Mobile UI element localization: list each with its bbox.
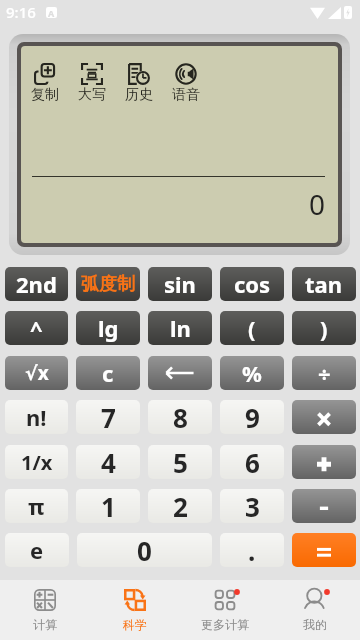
staticText: 语音	[172, 86, 200, 104]
button[interactable]: tan	[292, 267, 356, 301]
button[interactable]: (	[220, 311, 284, 345]
staticText: 4	[101, 445, 116, 479]
staticText: 我的	[303, 617, 327, 632]
button[interactable]: 计算	[0, 580, 90, 640]
staticText: ^	[30, 313, 43, 343]
staticText: 6	[245, 445, 260, 479]
staticText: 复制	[31, 86, 59, 104]
button[interactable]: 更多计算	[180, 580, 270, 640]
staticText: 更多计算	[201, 617, 249, 632]
staticText: 3	[245, 489, 260, 523]
staticText: ln	[170, 313, 191, 343]
staticText: 2nd	[16, 269, 57, 299]
button[interactable]: 1	[76, 489, 140, 523]
button[interactable]: Backspace	[148, 356, 212, 390]
button[interactable]: Equals	[292, 533, 356, 567]
staticText: 大写	[78, 86, 106, 104]
staticText: sin	[164, 269, 196, 299]
staticText: 7	[101, 400, 116, 434]
staticText: n!	[26, 402, 47, 432]
button[interactable]: ^	[5, 311, 68, 345]
staticText: 0	[137, 533, 152, 567]
button[interactable]: cos	[220, 267, 284, 301]
button[interactable]: 7	[76, 400, 140, 434]
button[interactable]: ÷	[292, 356, 356, 390]
button[interactable]: ln	[148, 311, 212, 345]
staticText: (	[248, 313, 256, 343]
button[interactable]: 9	[220, 400, 284, 434]
button[interactable]: 弧度制	[76, 267, 140, 301]
button[interactable]: 2nd	[5, 267, 68, 301]
staticText: 9:16	[6, 2, 36, 22]
button[interactable]: 语音	[162, 63, 209, 104]
button[interactable]: 0	[77, 533, 212, 567]
button[interactable]: 复制	[21, 63, 68, 104]
button[interactable]: π	[5, 489, 68, 523]
button[interactable]: 历史	[115, 63, 162, 104]
staticText: √x	[25, 360, 49, 386]
staticText: ÷	[318, 358, 331, 388]
staticText: e	[30, 535, 44, 565]
button[interactable]: Plus	[292, 445, 356, 479]
button[interactable]: )	[292, 311, 356, 345]
button[interactable]: 5	[148, 445, 212, 479]
staticText: 8	[173, 400, 188, 434]
staticText: π	[28, 491, 45, 521]
button[interactable]: 6	[220, 445, 284, 479]
staticText: 9	[245, 400, 260, 434]
button[interactable]: sin	[148, 267, 212, 301]
staticText: .	[248, 533, 256, 567]
button[interactable]: %	[220, 356, 284, 390]
button[interactable]: .	[220, 533, 284, 567]
staticText: 2	[173, 489, 188, 523]
staticText: A	[48, 7, 55, 18]
staticText: lg	[98, 313, 119, 343]
staticText: 1/x	[21, 449, 53, 476]
button[interactable]: n!	[5, 400, 68, 434]
button[interactable]: Multiply	[292, 400, 356, 434]
button[interactable]: 4	[76, 445, 140, 479]
button[interactable]: 3	[220, 489, 284, 523]
button[interactable]: 我的	[270, 580, 360, 640]
button[interactable]: 大写	[68, 63, 115, 104]
staticText: tan	[305, 269, 343, 299]
staticText: 计算	[33, 617, 57, 632]
staticText: )	[320, 313, 328, 343]
button[interactable]: e	[5, 533, 69, 567]
staticText: 弧度制	[81, 273, 135, 296]
button[interactable]: √x	[5, 356, 68, 390]
staticText: %	[242, 358, 262, 388]
button[interactable]: 2	[148, 489, 212, 523]
staticText: 5	[173, 445, 188, 479]
staticText: c	[102, 358, 114, 388]
staticText: cos	[234, 269, 271, 299]
button[interactable]: 8	[148, 400, 212, 434]
staticText: 科学	[123, 617, 147, 632]
button[interactable]: lg	[76, 311, 140, 345]
button[interactable]: 1/x	[5, 445, 68, 479]
button[interactable]: c	[76, 356, 140, 390]
button[interactable]: 科学	[90, 580, 180, 640]
button[interactable]: Minus	[292, 489, 356, 523]
staticText: 历史	[125, 86, 153, 104]
staticText: 0	[21, 185, 325, 223]
staticText: 1	[101, 489, 116, 523]
